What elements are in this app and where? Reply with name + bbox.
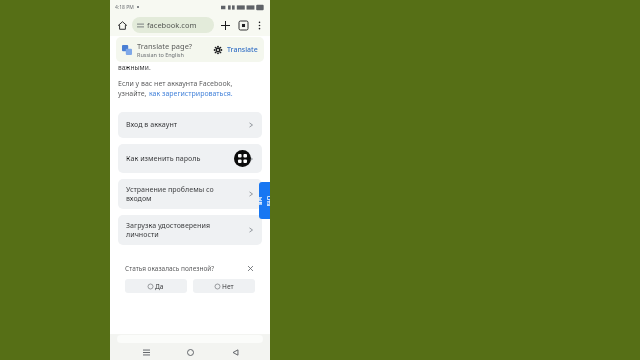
button[interactable]: Close xyxy=(246,264,255,273)
button[interactable]: More options xyxy=(252,18,266,32)
button[interactable]: New tab xyxy=(217,17,233,33)
staticText: Устранение проблемы со входом xyxy=(126,185,214,203)
button[interactable]: как зарегистрироваться. xyxy=(149,89,233,99)
staticText: Загрузка удостоверения личности xyxy=(126,221,210,239)
button[interactable]: Apps xyxy=(234,150,251,167)
button[interactable]: Отзыв xyxy=(259,182,270,219)
staticText: Да xyxy=(155,282,164,291)
staticText: 4:18 PM xyxy=(115,4,134,11)
staticText: Вход в аккаунт xyxy=(126,120,178,130)
button[interactable]: Home xyxy=(181,344,199,360)
button[interactable]: Translate xyxy=(227,45,258,55)
button[interactable]: Устранение проблемы со входом xyxy=(118,179,262,209)
staticText: Если у вас нет аккаунта Facebook, xyxy=(118,79,233,89)
button[interactable]: Нет xyxy=(193,279,255,293)
button[interactable]: Recents xyxy=(137,344,155,360)
button[interactable]: Да xyxy=(125,279,187,293)
button[interactable]: Translate page? xyxy=(116,37,264,62)
button[interactable]: Вход в аккаунт xyxy=(118,112,262,138)
staticText: узнайте, xyxy=(118,89,149,99)
staticText: Как изменить пароль xyxy=(126,154,201,164)
button[interactable]: facebook.com xyxy=(132,17,214,33)
button[interactable]: Translate settings xyxy=(212,44,224,56)
staticText: Russian to English xyxy=(137,51,184,58)
button[interactable]: Загрузка удостоверения личности xyxy=(118,215,262,245)
staticText: Статья оказалась полезной? xyxy=(125,264,215,273)
button[interactable]: Tabs xyxy=(235,17,251,33)
staticText: facebook.com xyxy=(147,20,197,30)
button[interactable]: Как изменить пароль xyxy=(118,144,262,173)
staticText: важными. xyxy=(118,63,151,72)
staticText: Отзыв xyxy=(259,195,270,206)
staticText: Translate page? xyxy=(137,41,193,51)
button[interactable]: Home xyxy=(114,17,130,33)
staticText: Нет xyxy=(222,282,234,291)
button[interactable]: Back xyxy=(226,344,244,360)
